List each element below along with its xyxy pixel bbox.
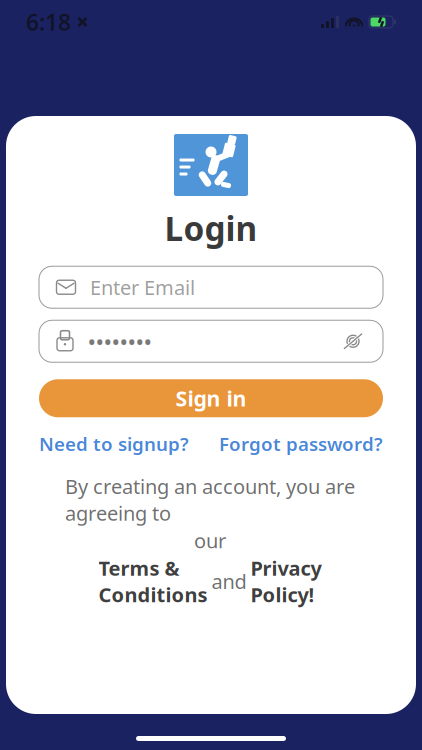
button[interactable]: Terms & Conditions [98,555,207,608]
staticText: Need to signup? [39,431,189,456]
staticText: •••••••• [88,328,152,355]
staticText: Forgot password? [219,431,383,456]
button[interactable]: Privacy Policy! [250,555,321,608]
staticText: our [194,527,226,554]
button[interactable]: Show password [340,330,366,352]
button[interactable]: Forgot password? [219,431,383,456]
staticText: Sign in [175,384,246,412]
staticText: Privacy Policy! [250,555,321,608]
staticText: By creating an account, you are agreeing… [65,473,355,526]
button[interactable]: Sign in [39,379,383,417]
staticText: 6:18 [26,7,71,37]
staticText: Enter Email [90,274,195,301]
staticText: and [211,568,246,595]
staticText: Terms & Conditions [98,555,207,608]
button[interactable]: Need to signup? [39,431,189,456]
staticText: Login [164,206,257,250]
